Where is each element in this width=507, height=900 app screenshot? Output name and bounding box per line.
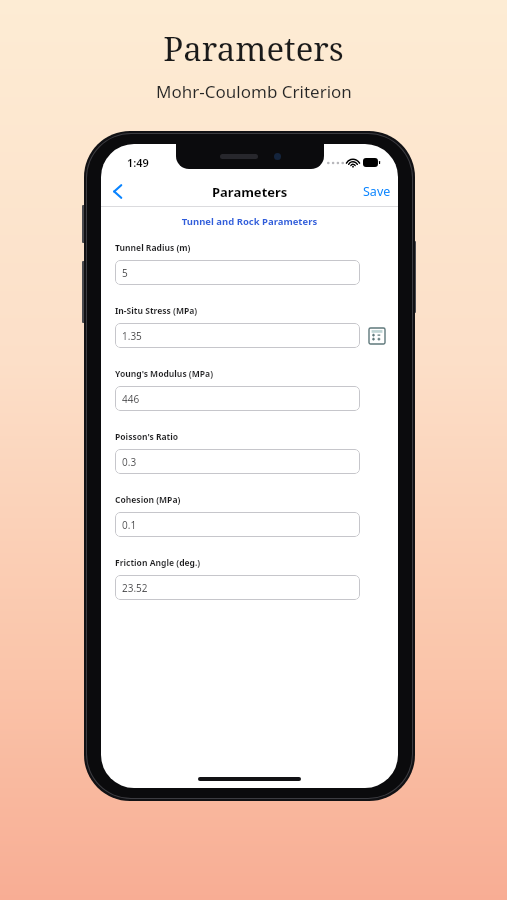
staticText: Mohr-Coulomb Criterion [156, 80, 352, 103]
button[interactable]: Calculator [367, 326, 386, 345]
button[interactable]: Save [356, 178, 398, 205]
staticText: 5 [122, 266, 128, 280]
staticText: 1.35 [122, 329, 142, 343]
button[interactable]: 1.35 [115, 323, 360, 348]
button[interactable]: 5 [115, 260, 360, 285]
staticText: Poisson's Ratio [115, 431, 179, 443]
button[interactable]: Back [101, 177, 135, 206]
staticText: Parameters [163, 26, 344, 71]
staticText: Tunnel and Rock Parameters [101, 215, 398, 228]
staticText: Young's Modulus (MPa) [115, 368, 214, 380]
button[interactable]: 0.1 [115, 512, 360, 537]
staticText: 0.1 [122, 518, 137, 532]
staticText: Friction Angle (deg.) [115, 557, 201, 569]
button[interactable]: 0.3 [115, 449, 360, 474]
staticText: 23.52 [122, 581, 148, 595]
staticText: Parameters [212, 183, 288, 201]
button[interactable]: 446 [115, 386, 360, 411]
staticText: Cohesion (MPa) [115, 494, 181, 506]
staticText: 1:49 [127, 155, 149, 170]
staticText: Tunnel Radius (m) [115, 242, 191, 254]
button[interactable]: 23.52 [115, 575, 360, 600]
staticText: 446 [122, 392, 140, 406]
staticText: 0.3 [122, 455, 137, 469]
staticText: In-Situ Stress (MPa) [115, 305, 198, 317]
staticText: Save [363, 183, 391, 200]
